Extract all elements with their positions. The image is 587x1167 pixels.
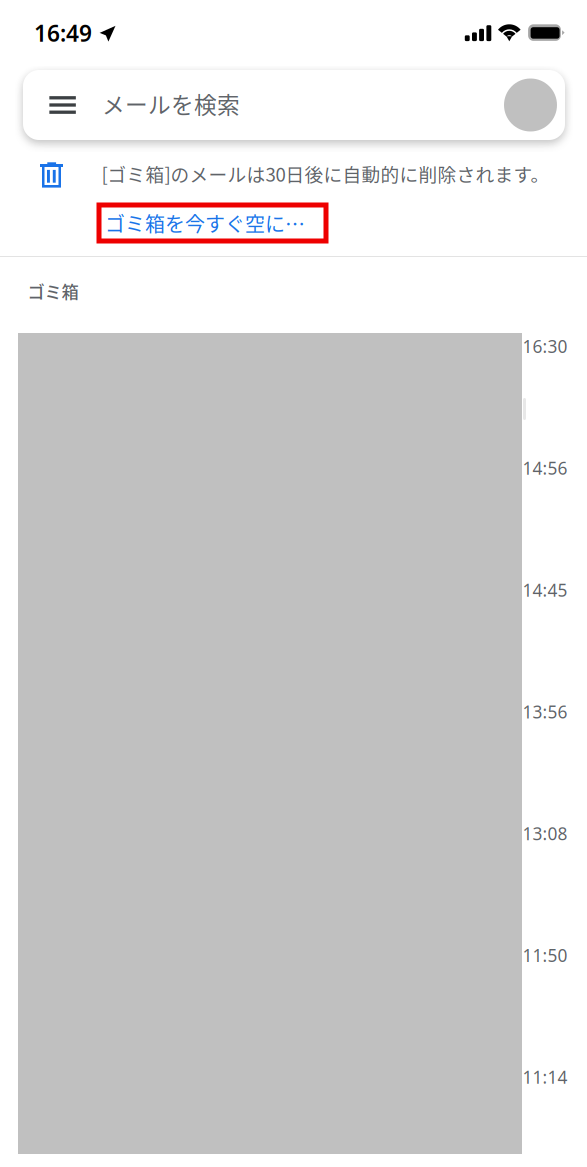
staticText: ゴミ箱を今すぐ空にする: [105, 208, 320, 237]
button[interactable]: 13:08: [503, 820, 567, 846]
staticText: [ゴミ箱]のメールは30日後に自動的に削除されます。: [101, 160, 549, 187]
staticText: 14:56: [522, 457, 567, 480]
staticText: ゴミ箱: [27, 278, 78, 304]
button[interactable]: ゴミ箱を今すぐ空にする: [99, 205, 326, 241]
button[interactable]: 14:45: [503, 577, 567, 603]
button[interactable]: 14:56: [503, 455, 567, 481]
staticText: 11:14: [522, 1066, 567, 1089]
button[interactable]: 16:30: [503, 333, 567, 359]
staticText: メールを検索: [102, 87, 240, 120]
button[interactable]: 13:56: [503, 699, 567, 725]
staticText: 16:30: [522, 335, 567, 358]
staticText: 14:45: [522, 578, 567, 601]
staticText: 13:56: [522, 700, 567, 723]
staticText: 11:50: [522, 944, 567, 967]
staticText: 16:49: [34, 18, 92, 48]
staticText: 13:08: [522, 822, 567, 845]
button[interactable]: 11:14: [503, 1064, 567, 1090]
button[interactable]: メールを検索: [102, 68, 472, 138]
button[interactable]: アカウント: [504, 78, 557, 131]
button[interactable]: メニュー: [32, 70, 94, 140]
button[interactable]: 11:50: [503, 942, 567, 968]
